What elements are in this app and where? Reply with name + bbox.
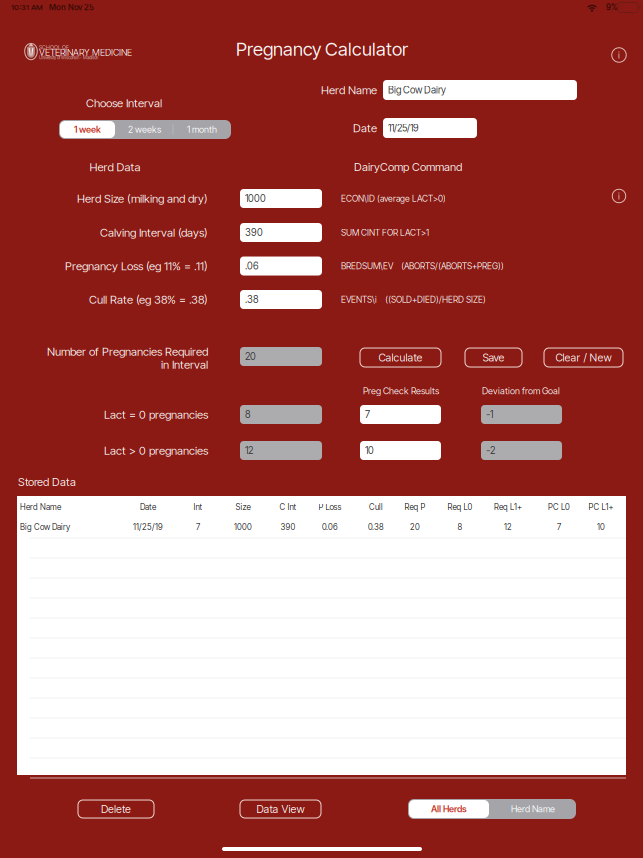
staticText: 390 — [245, 227, 263, 238]
staticText: VETERINARY MEDICINE — [39, 47, 132, 58]
staticText: i — [618, 190, 620, 202]
staticText: 0.38 — [368, 522, 384, 532]
staticText: Req L1+ — [494, 502, 522, 512]
staticText: 10:31 AM — [11, 3, 43, 12]
staticText: 8 — [245, 409, 251, 420]
staticText: DairyComp Command — [354, 160, 462, 174]
staticText: Req P — [404, 502, 425, 512]
staticText: PC L0 — [548, 502, 570, 512]
staticText: Save — [482, 351, 504, 364]
staticText: Big Cow Dairy — [388, 84, 446, 96]
staticText: 20 — [245, 351, 256, 362]
button[interactable]: 1 week — [59, 120, 116, 139]
staticText: Calculate — [378, 351, 422, 364]
button[interactable]: Data View — [240, 800, 321, 818]
staticText: .06 — [245, 260, 259, 272]
button[interactable]: Delete — [78, 800, 154, 818]
staticText: Herd Name — [20, 502, 61, 512]
button[interactable]: Save — [465, 348, 522, 367]
staticText: ECON\ID (average LACT>0) — [341, 193, 446, 204]
staticText: 9% — [606, 2, 617, 12]
staticText: 1 month — [187, 124, 217, 135]
staticText: C Int — [279, 502, 296, 512]
staticText: 10 — [597, 522, 605, 532]
button[interactable]: 2 weeks — [116, 120, 173, 139]
button[interactable]: Information — [612, 48, 626, 62]
staticText: Cull — [369, 502, 383, 512]
staticText: Number of Pregnancies Required — [47, 345, 208, 358]
staticText: SUM CINT FOR LACT>1 — [341, 227, 429, 238]
staticText: 7 — [365, 409, 370, 420]
staticText: in Interval — [161, 358, 208, 371]
staticText: 12 — [504, 522, 512, 532]
staticText: EVENTS\i ((SOLD+DIED)/HERD SIZE) — [341, 294, 486, 305]
staticText: Stored Data — [18, 475, 76, 489]
staticText: 7 — [196, 522, 200, 532]
staticText: 7 — [557, 522, 561, 532]
staticText: Preg Check Results — [363, 385, 439, 396]
button[interactable]: Herd Name — [490, 799, 576, 819]
staticText: Mon Nov 25 — [49, 2, 94, 12]
staticText: SCHOOL OF — [39, 44, 69, 50]
staticText: 20 — [410, 522, 420, 532]
staticText: 0.06 — [322, 522, 338, 532]
staticText: Herd Data — [89, 160, 140, 174]
staticText: 11/25/19 — [133, 522, 163, 532]
staticText: -2 — [486, 445, 495, 456]
staticText: All Herds — [431, 803, 467, 814]
staticText: Delete — [101, 802, 131, 816]
staticText: Cull Rate (eg 38% = .38) — [89, 293, 208, 306]
staticText: Pregnancy Calculator — [236, 38, 408, 60]
staticText: 390 — [280, 522, 295, 532]
staticText: Size — [235, 502, 250, 512]
staticText: Lact > 0 pregnancies — [104, 444, 208, 457]
button[interactable]: Clear / New — [544, 348, 623, 367]
staticText: Date — [353, 121, 377, 135]
staticText: 10 — [365, 445, 374, 456]
staticText: Req L0 — [447, 502, 472, 512]
staticText: Date — [140, 502, 156, 512]
staticText: PC L1+ — [588, 502, 613, 512]
staticText: 8 — [457, 522, 462, 532]
staticText: -1 — [486, 409, 493, 420]
staticText: Herd Size (milking and dry) — [77, 192, 208, 205]
staticText: Big Cow Dairy — [20, 522, 70, 532]
button[interactable]: Information — [612, 189, 626, 203]
staticText: 12 — [245, 445, 253, 456]
staticText: 1 week — [74, 124, 101, 135]
staticText: P Loss — [318, 502, 341, 512]
staticText: 1000 — [234, 522, 252, 532]
staticText: Herd Name — [321, 83, 377, 97]
staticText: Deviation from Goal — [482, 385, 560, 396]
button[interactable]: All Herds — [408, 799, 490, 819]
staticText: 2 weeks — [128, 124, 161, 135]
staticText: University of Wisconsin - Madison — [39, 55, 98, 60]
staticText: 11/25/19 — [388, 122, 419, 134]
staticText: Clear / New — [555, 351, 611, 364]
staticText: Pregnancy Loss (eg 11% = .11) — [65, 259, 208, 273]
button[interactable]: 1 month — [173, 120, 231, 139]
staticText: Data View — [256, 802, 304, 816]
button[interactable]: Calculate — [360, 348, 441, 367]
staticText: BREDSUM\EV (ABORTS/(ABORTS+PREG)) — [341, 261, 504, 271]
staticText: Int — [193, 502, 202, 512]
staticText: Lact = 0 pregnancies — [104, 408, 208, 421]
staticText: Calving Interval (days) — [100, 226, 208, 239]
staticText: i — [618, 49, 620, 61]
staticText: Choose Interval — [86, 96, 162, 110]
staticText: Herd Name — [511, 803, 555, 814]
staticText: 1000 — [245, 193, 266, 204]
staticText: .38 — [245, 294, 259, 305]
